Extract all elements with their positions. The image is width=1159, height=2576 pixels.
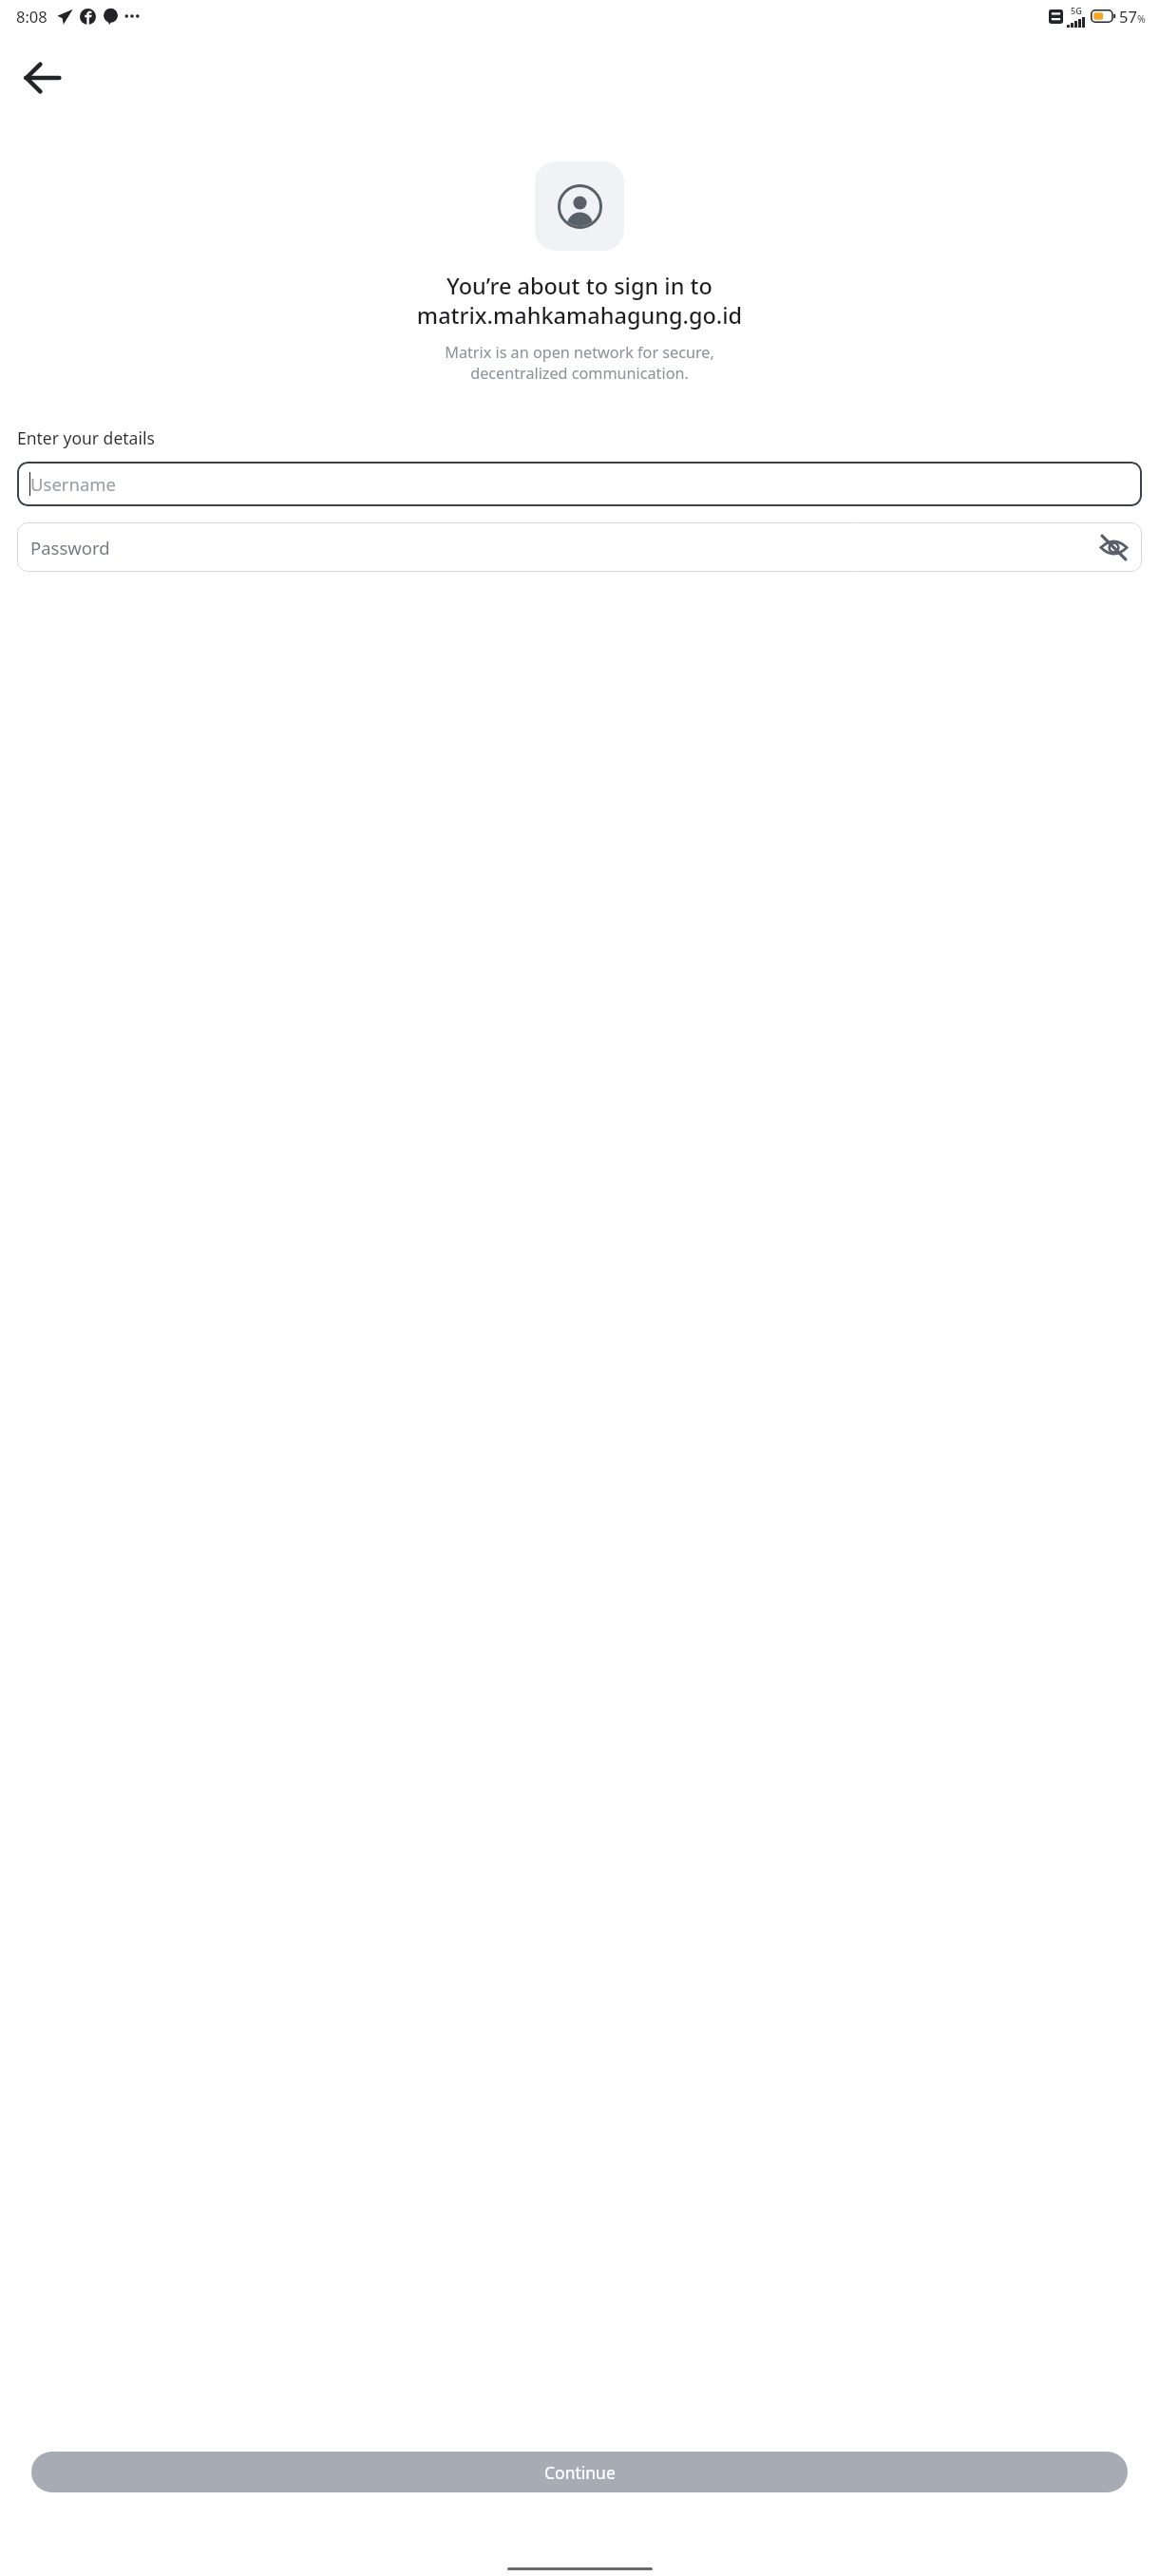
button[interactable]: Show password xyxy=(1092,526,1134,568)
staticText: You’re about to sign in to matrix.mahkam… xyxy=(19,271,1140,330)
staticText: % xyxy=(1137,12,1146,26)
staticText: Continue xyxy=(544,2461,616,2484)
staticText: 57 xyxy=(1119,6,1137,27)
staticText: Matrix is an open network for secure, de… xyxy=(25,342,1134,384)
staticText: Username xyxy=(30,472,117,496)
button[interactable]: Continue xyxy=(31,2452,1128,2492)
staticText: 5G xyxy=(1071,5,1082,16)
staticText: Enter your details xyxy=(17,426,1159,449)
staticText: 8:08 xyxy=(16,6,47,27)
staticText: Password xyxy=(30,536,110,559)
button[interactable]: Back xyxy=(11,47,72,108)
button[interactable]: Username xyxy=(17,462,1142,506)
button[interactable]: Password xyxy=(17,522,1142,572)
